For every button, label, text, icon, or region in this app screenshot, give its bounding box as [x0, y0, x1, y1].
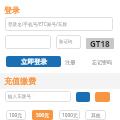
- staticText: 登录: [4, 5, 20, 15]
- button[interactable]: 1000元: [59, 110, 80, 120]
- staticText: 忘记密码: [92, 59, 112, 65]
- button[interactable]: 输入车牌号: [5, 91, 71, 102]
- button[interactable]: 100元: [6, 110, 26, 120]
- staticText: 立即登录: [21, 58, 47, 66]
- staticText: 注册: [65, 59, 75, 65]
- button[interactable]: 立即登录: [6, 56, 61, 67]
- button[interactable]: 验证码: [56, 35, 81, 49]
- button[interactable]: 登录名/手机号/ETC账号/车牌: [5, 17, 113, 31]
- button[interactable]: 忘记密码: [91, 57, 113, 66]
- staticText: 100元: [9, 112, 23, 119]
- button[interactable]: 500元: [32, 110, 53, 120]
- staticText: 输入车牌号: [8, 94, 31, 100]
- staticText: 验证码: [59, 39, 73, 45]
- button[interactable]: Refresh captcha: [86, 38, 114, 49]
- button[interactable]: 注册: [64, 57, 75, 66]
- staticText: 充值缴费: [4, 76, 36, 86]
- button[interactable]: [5, 35, 51, 49]
- button[interactable]: Choose plate: [76, 92, 90, 102]
- staticText: GT18: [90, 38, 110, 49]
- button[interactable]: Query balance: [95, 92, 110, 102]
- staticText: 其他: [91, 112, 101, 118]
- staticText: 1000元: [62, 112, 78, 119]
- button[interactable]: 其他: [85, 110, 106, 120]
- staticText: 登录名/手机号/ETC账号/车牌: [8, 21, 67, 27]
- staticText: 500元: [36, 112, 50, 119]
